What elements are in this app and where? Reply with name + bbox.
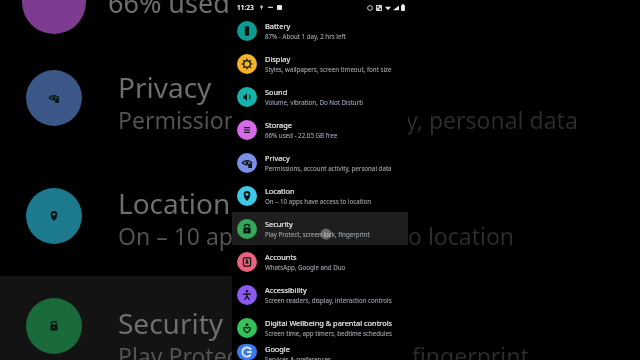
staticText: Location	[118, 184, 231, 222]
button[interactable]: Battery	[232, 14, 408, 47]
staticText: 11:23	[237, 3, 254, 12]
button[interactable]: Sound	[232, 80, 408, 113]
staticText: Storage	[265, 120, 292, 130]
button[interactable]: Display	[232, 47, 408, 80]
staticText: 66% used - 22.05 GB free	[265, 131, 338, 139]
staticText: Sound	[265, 87, 288, 97]
staticText: Play Protect, screen lock, fingerprint	[265, 230, 370, 238]
button[interactable]: Google	[232, 344, 408, 360]
staticText: Digital Wellbeing & parental controls	[265, 318, 393, 328]
staticText: Display	[265, 54, 291, 64]
staticText: Styles, wallpapers, screen timeout, font…	[265, 65, 392, 73]
button[interactable]: Storage	[232, 113, 408, 146]
staticText: Privacy	[265, 153, 290, 163]
staticText: WhatsApp, Google and Duo	[265, 263, 346, 271]
staticText: Volume, vibration, Do Not Disturb	[265, 98, 364, 106]
staticText: Accessibility	[265, 285, 307, 295]
staticText: Accounts	[265, 252, 297, 262]
staticText: Location	[265, 186, 295, 196]
button[interactable]: Privacy	[232, 146, 408, 179]
staticText: 87% - About 1 day, 2 hrs left	[265, 32, 346, 40]
staticText: fingerprint	[412, 340, 529, 360]
staticText: On – 10 apps have access to location	[265, 197, 372, 205]
staticText: Services & preferences	[265, 355, 331, 360]
staticText: Permission	[118, 104, 238, 135]
button[interactable]: Location	[232, 179, 408, 212]
staticText: Security	[265, 219, 293, 229]
staticText: Security	[118, 304, 224, 342]
button[interactable]: Digital Wellbeing & parental controls	[232, 311, 408, 344]
staticText: Permissions, account activity, personal …	[265, 164, 392, 172]
staticText: Battery	[265, 21, 291, 31]
button[interactable]: Accounts	[232, 245, 408, 278]
staticText: o location	[408, 220, 515, 251]
staticText: Play Protec	[118, 340, 238, 360]
staticText: Screen time, app timers, bedtime schedul…	[265, 329, 392, 337]
staticText: y, personal data	[406, 104, 578, 135]
button[interactable]: Accessibility	[232, 278, 408, 311]
staticText: On – 10 ap	[118, 220, 233, 251]
staticText: Screen readers, display, interaction con…	[265, 296, 392, 304]
staticText: Google	[265, 344, 290, 354]
staticText: 66% used -	[108, 0, 246, 21]
button[interactable]: Security	[232, 212, 408, 245]
staticText: Privacy	[118, 68, 212, 106]
